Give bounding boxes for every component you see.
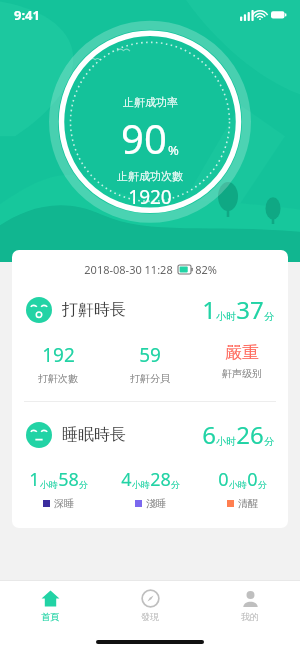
staticText: 82% [195, 262, 217, 277]
staticText: 止鼾成功率 [123, 95, 178, 109]
other: Sleep [26, 422, 52, 448]
staticText: 1920 [128, 184, 172, 210]
staticText: 90 [121, 111, 167, 165]
staticText: 小時 [229, 479, 247, 490]
button[interactable]: 嚴重 [196, 340, 288, 382]
other: 首頁 [41, 589, 60, 608]
button[interactable]: 59 [104, 340, 196, 387]
button[interactable]: 我的 [200, 581, 300, 629]
staticText: 分 [171, 479, 180, 490]
staticText: 清醒 [238, 497, 258, 510]
staticText: 59 [139, 342, 161, 368]
staticText: 192 [42, 342, 75, 368]
staticText: 分 [264, 310, 274, 323]
staticText: 首頁 [41, 611, 59, 622]
button[interactable]: 192 [12, 340, 104, 387]
staticText: 1 [29, 467, 40, 492]
staticText: 發現 [141, 611, 159, 622]
staticText: 鼾声级别 [222, 367, 262, 380]
button[interactable]: 4 [104, 465, 196, 512]
other: Snore [26, 297, 52, 323]
staticText: 6 [202, 418, 216, 451]
staticText: 打鼾次數 [38, 372, 78, 385]
other: 發現 [141, 589, 160, 608]
button[interactable]: Sleep [12, 418, 288, 451]
staticText: 小时 [216, 435, 236, 448]
staticText: 淺睡 [146, 497, 166, 510]
staticText: 小時 [40, 479, 58, 490]
staticText: 0 [247, 467, 258, 492]
staticText: 分 [264, 435, 274, 448]
staticText: 分 [79, 479, 88, 490]
button[interactable]: 0 [196, 465, 288, 512]
staticText: 小時 [132, 479, 150, 490]
staticText: 1 [202, 293, 216, 326]
button[interactable]: 發現 [100, 581, 200, 629]
staticText: 打鼾時長 [62, 300, 126, 320]
staticText: 4 [121, 467, 132, 492]
staticText: 28 [150, 467, 171, 492]
staticText: 止鼾成功次數 [117, 169, 183, 183]
staticText: 26 [236, 418, 264, 451]
staticText: 嚴重 [225, 342, 259, 363]
staticText: 深睡 [54, 497, 74, 510]
button[interactable]: 1 [12, 465, 104, 512]
staticText: 37 [236, 293, 264, 326]
staticText: 分 [258, 479, 267, 490]
staticText: 打鼾分貝 [130, 372, 170, 385]
staticText: 58 [58, 467, 79, 492]
staticText: 我的 [241, 611, 259, 622]
button[interactable]: 首頁 [0, 581, 100, 629]
button[interactable]: Snore [12, 293, 288, 326]
staticText: 小时 [216, 310, 236, 323]
staticText: 睡眠時長 [62, 425, 126, 445]
other: 我的 [241, 589, 260, 608]
staticText: % [168, 141, 179, 159]
staticText: 2018-08-30 11:28 [84, 262, 173, 277]
staticText: 0 [218, 467, 229, 492]
staticText: 9:41 [14, 6, 40, 24]
